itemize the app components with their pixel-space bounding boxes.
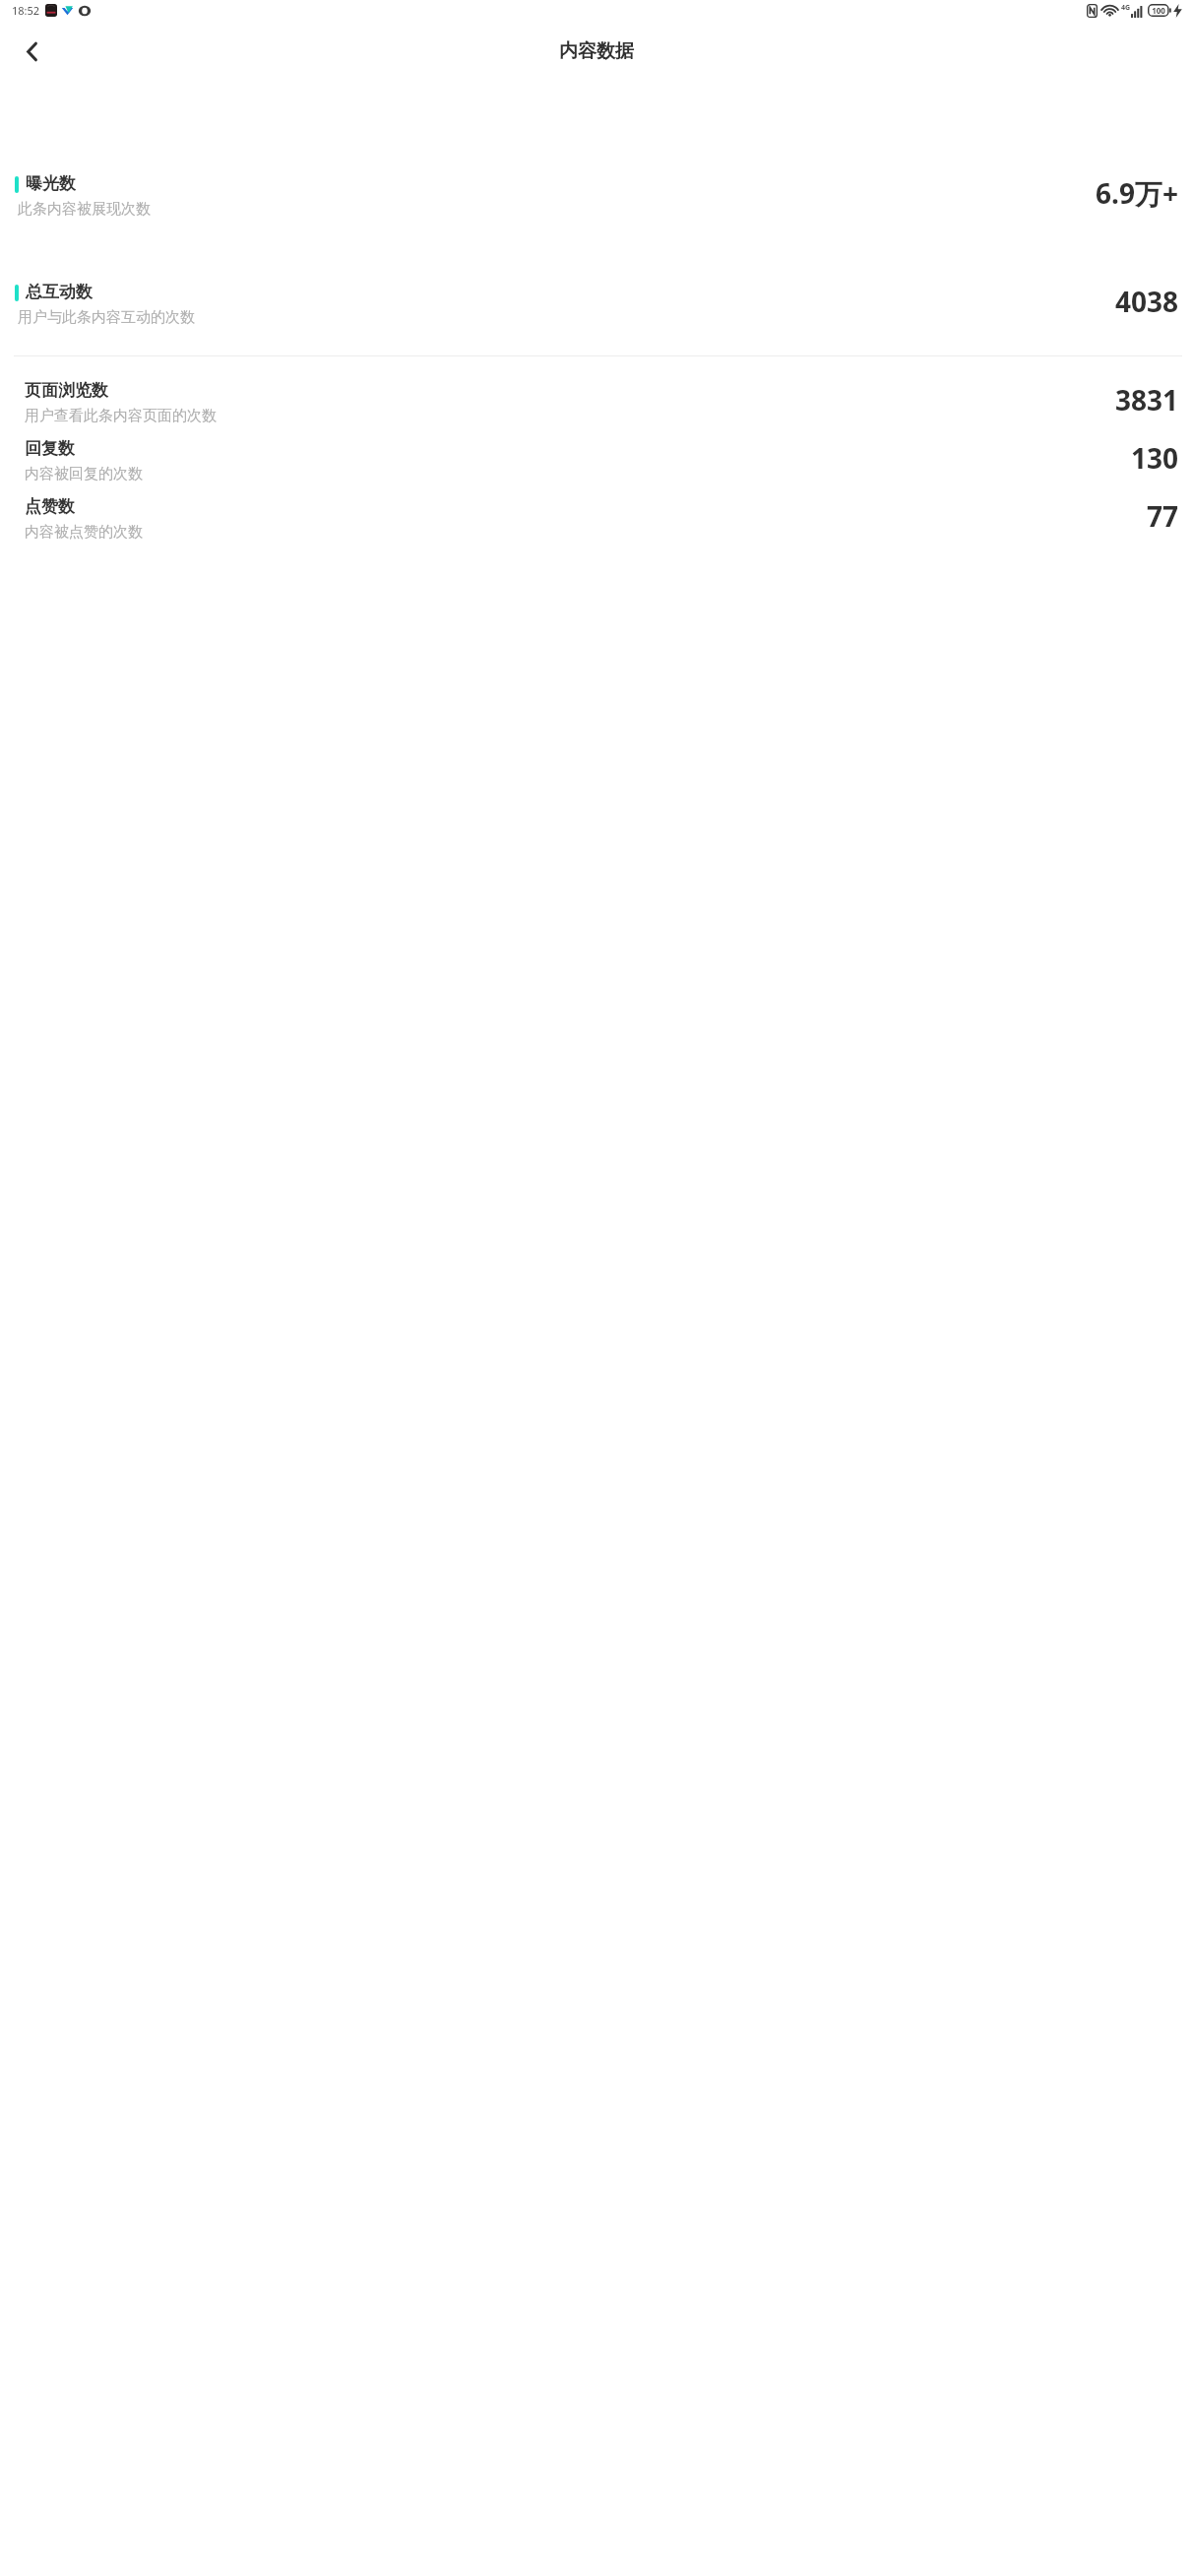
staticText: 总互动数 bbox=[26, 282, 93, 302]
staticText: 3831 bbox=[1114, 381, 1178, 419]
button[interactable]: 页面浏览数 bbox=[0, 380, 1193, 425]
staticText: 内容被点赞的次数 bbox=[25, 523, 143, 542]
staticText: 用户查看此条内容页面的次数 bbox=[25, 407, 217, 425]
button[interactable]: 曝光数 bbox=[0, 173, 1193, 219]
staticText: 曝光数 bbox=[26, 173, 76, 194]
staticText: 内容数据 bbox=[559, 39, 634, 63]
staticText: 4G bbox=[1121, 3, 1131, 13]
staticText: 页面浏览数 bbox=[25, 380, 108, 401]
staticText: 回复数 bbox=[25, 438, 75, 459]
staticText: 18:52 bbox=[12, 3, 40, 18]
staticText: 4038 bbox=[1114, 283, 1178, 320]
staticText: 77 bbox=[1146, 497, 1178, 535]
button[interactable]: 回复数 bbox=[0, 438, 1193, 483]
staticText: 点赞数 bbox=[25, 496, 75, 517]
staticText: 内容被回复的次数 bbox=[25, 465, 143, 483]
staticText: 用户与此条内容互动的次数 bbox=[18, 308, 195, 327]
staticText: 此条内容被展现次数 bbox=[18, 200, 151, 219]
button[interactable]: 总互动数 bbox=[0, 282, 1193, 327]
button[interactable]: 点赞数 bbox=[0, 496, 1193, 542]
staticText: 6.9万+ bbox=[1096, 174, 1178, 212]
button[interactable]: 返回 bbox=[8, 28, 55, 75]
staticText: 130 bbox=[1130, 439, 1178, 477]
staticText: 100 bbox=[1152, 5, 1165, 16]
